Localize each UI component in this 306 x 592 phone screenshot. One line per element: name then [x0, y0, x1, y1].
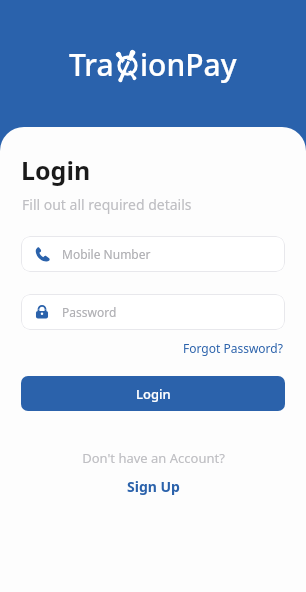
other: Mobile number — [35, 247, 50, 262]
staticText: ionPay — [140, 44, 237, 85]
staticText: Don't have an Account? — [82, 449, 225, 467]
button[interactable]: Mobile number — [21, 236, 285, 272]
button[interactable]: Password — [21, 294, 285, 330]
other: Password — [35, 305, 49, 319]
staticText: Forgot Password? — [183, 340, 283, 356]
button[interactable]: Sign Up — [121, 475, 186, 498]
staticText: Mobile Number — [62, 246, 151, 262]
button[interactable]: Login — [21, 376, 285, 411]
staticText: Password — [62, 304, 117, 320]
staticText: Login — [21, 153, 91, 187]
staticText: Sign Up — [127, 477, 180, 496]
staticText: Login — [136, 385, 171, 403]
other: TraxionPay logo mark — [114, 48, 140, 82]
button[interactable]: Forgot Password? — [181, 338, 285, 358]
staticText: Tra — [69, 44, 114, 85]
staticText: Fill out all required details — [22, 195, 192, 214]
